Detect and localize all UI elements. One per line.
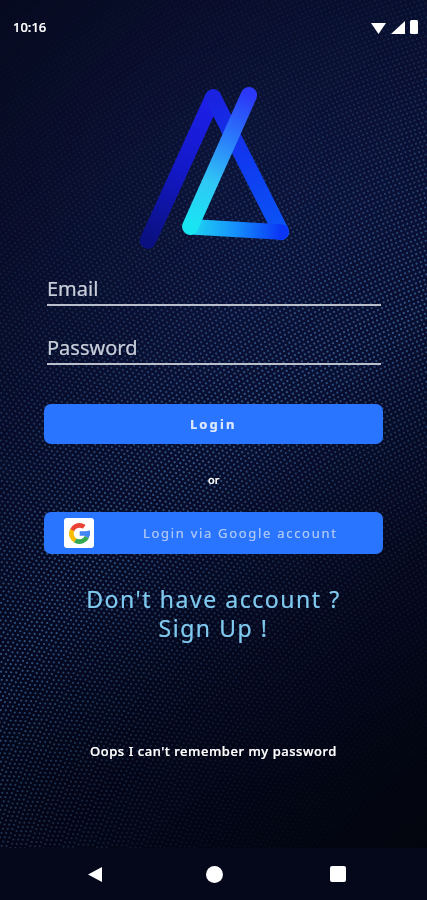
- button[interactable]: Recent apps: [314, 850, 362, 898]
- staticText: Email: [47, 275, 99, 302]
- staticText: Login via Google account: [143, 524, 338, 542]
- button[interactable]: Back: [71, 850, 119, 898]
- button[interactable]: Oops I can't remember my password: [0, 742, 427, 760]
- button[interactable]: Login: [44, 404, 383, 444]
- button[interactable]: Login via Google account: [44, 512, 383, 554]
- staticText: 10:16: [13, 18, 47, 36]
- staticText: Don't have account ? Sign Up !: [86, 583, 341, 644]
- button[interactable]: Don't have account ? Sign Up !: [0, 583, 427, 644]
- staticText: or: [208, 472, 220, 487]
- staticText: Password: [47, 334, 138, 361]
- staticText: Login: [190, 415, 237, 433]
- staticText: Oops I can't remember my password: [90, 742, 337, 760]
- button[interactable]: Home: [190, 850, 238, 898]
